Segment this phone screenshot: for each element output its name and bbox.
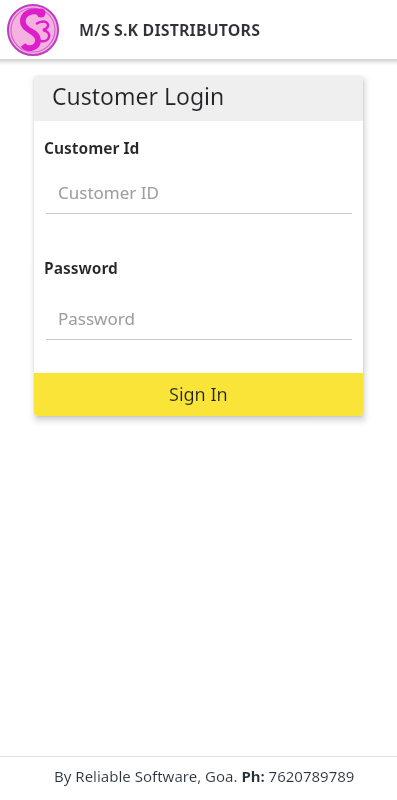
button[interactable]: Password [46,303,352,340]
staticText: Customer Login [52,80,225,111]
staticText: Customer Id [44,137,140,158]
staticText: M/S S.K DISTRIBUTORS [79,19,261,41]
staticText: By Reliable Software, Goa. Ph: 762078978… [54,766,355,786]
staticText: Password [44,257,118,278]
staticText: Sign In [169,382,228,407]
button[interactable]: Customer ID [46,177,352,214]
staticText: Customer ID [58,181,159,204]
button[interactable]: Sign In [34,373,363,416]
staticText: Password [58,307,135,330]
